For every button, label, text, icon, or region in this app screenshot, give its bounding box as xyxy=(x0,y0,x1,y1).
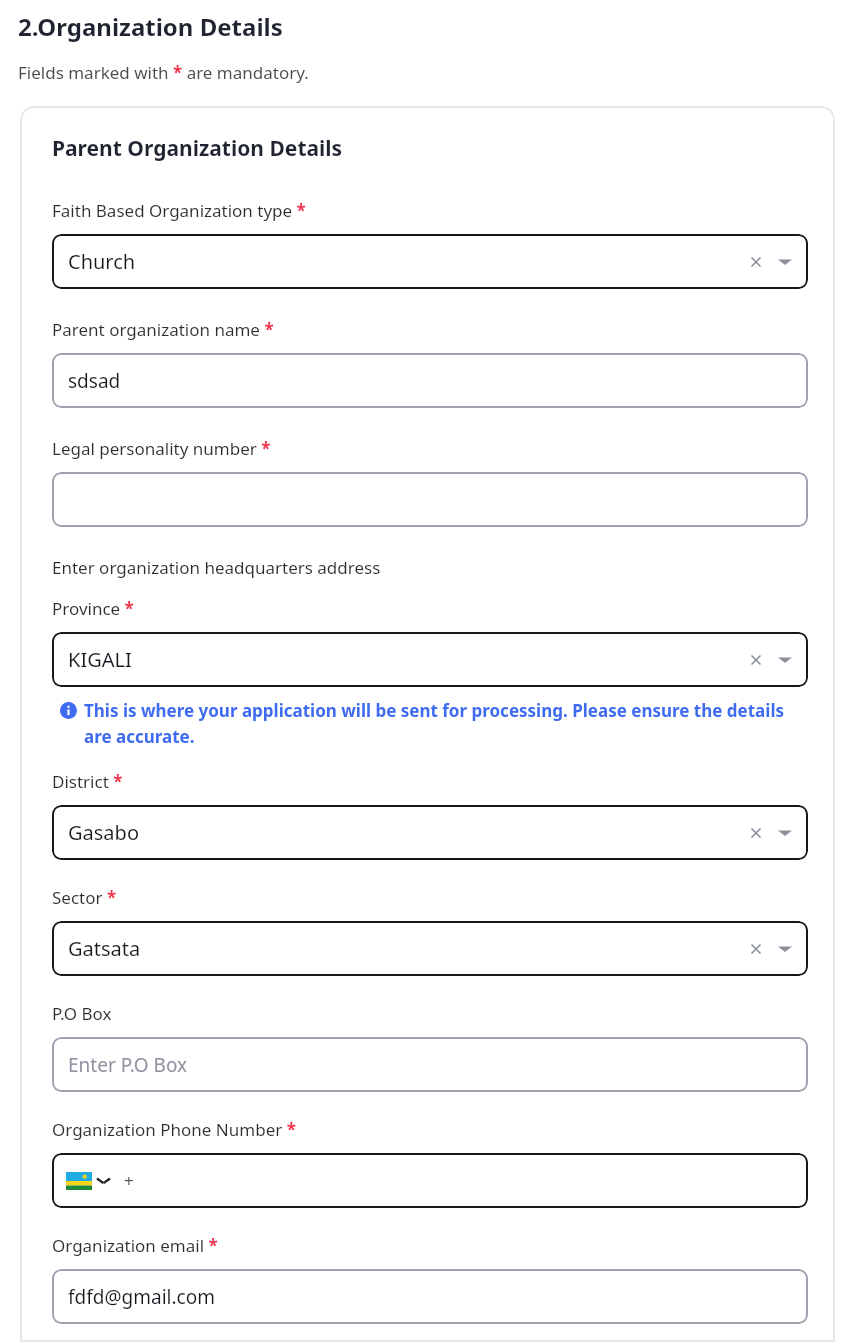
other: Clear xyxy=(748,825,764,841)
button[interactable] xyxy=(52,472,808,527)
other: Clear xyxy=(748,941,764,957)
other: Open dropdown xyxy=(778,826,792,840)
other: Clear xyxy=(748,254,764,270)
staticText: Gatsata xyxy=(68,935,141,962)
other: Country Rwanda xyxy=(66,1172,92,1190)
staticText: Parent organization name * xyxy=(52,318,274,341)
staticText: Enter organization headquarters address xyxy=(52,556,381,579)
button[interactable]: fdfd@gmail.com xyxy=(52,1269,808,1324)
button[interactable]: Gasabo xyxy=(52,805,808,860)
button[interactable]: Enter P.O Box xyxy=(52,1037,808,1092)
button[interactable]: sdsad xyxy=(52,353,808,408)
other: Open dropdown xyxy=(778,653,792,667)
staticText: This is where your application will be s… xyxy=(84,699,808,748)
staticText: fdfd@gmail.com xyxy=(68,1284,215,1310)
button[interactable]: Gatsata xyxy=(52,921,808,976)
other: Open dropdown xyxy=(778,942,792,956)
staticText: Legal personality number * xyxy=(52,437,271,460)
staticText: Parent Organization Details xyxy=(52,134,343,163)
button[interactable]: Country Rwanda xyxy=(52,1153,808,1208)
staticText: Organization Phone Number * xyxy=(52,1118,296,1141)
button[interactable]: Church xyxy=(52,234,808,289)
staticText: Province * xyxy=(52,597,134,620)
staticText: 2.Organization Details xyxy=(18,10,283,43)
staticText: Sector * xyxy=(52,886,117,909)
staticText: Fields marked with * are mandatory. xyxy=(18,61,309,84)
staticText: Organization email * xyxy=(52,1234,218,1257)
staticText: Gasabo xyxy=(68,819,139,846)
staticText: You must provide a valid organization em… xyxy=(84,1338,531,1342)
staticText: Enter P.O Box xyxy=(68,1052,188,1078)
button[interactable]: KIGALI xyxy=(52,632,808,687)
other: Open dropdown xyxy=(778,255,792,269)
staticText: KIGALI xyxy=(68,646,132,673)
staticText: Faith Based Organization type * xyxy=(52,199,306,222)
staticText: District * xyxy=(52,770,123,793)
staticText: Church xyxy=(68,248,136,275)
staticText: + xyxy=(124,1169,134,1192)
staticText: P.O Box xyxy=(52,1002,112,1025)
staticText: sdsad xyxy=(68,368,121,394)
other: Clear xyxy=(748,652,764,668)
